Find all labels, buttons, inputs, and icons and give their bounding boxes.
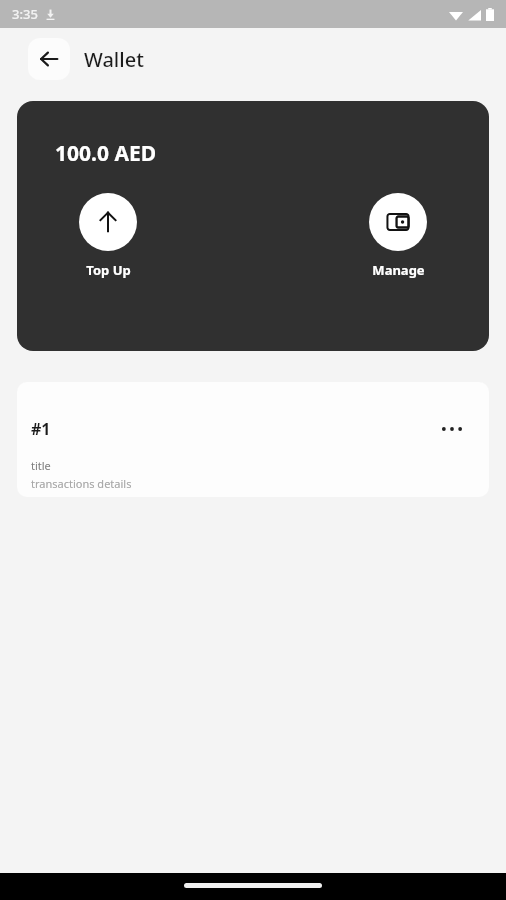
- staticText: Top Up: [86, 261, 131, 279]
- button[interactable]: Manage: [363, 191, 433, 281]
- button[interactable]: More options: [435, 412, 469, 446]
- staticText: transactions details: [31, 476, 132, 491]
- staticText: Manage: [372, 261, 425, 279]
- staticText: 3:35: [12, 5, 38, 23]
- staticText: #1: [31, 418, 51, 440]
- button[interactable]: Back: [28, 38, 70, 80]
- staticText: Wallet: [84, 46, 144, 73]
- button[interactable]: #1: [17, 382, 489, 497]
- button[interactable]: Top Up: [73, 191, 143, 281]
- staticText: title: [31, 458, 51, 473]
- staticText: 100.0 AED: [55, 139, 157, 168]
